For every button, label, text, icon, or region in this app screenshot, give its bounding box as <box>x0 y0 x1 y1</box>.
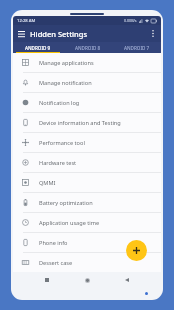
staticText: Hidden Settings <box>30 29 88 39</box>
button[interactable]: Back <box>121 274 133 286</box>
button[interactable]: Notification log <box>13 93 161 112</box>
staticText: Battery optimization <box>39 199 93 207</box>
staticText: Manage notification <box>39 79 92 87</box>
staticText: ANDROID 8 <box>75 45 101 51</box>
button[interactable]: Open navigation menu <box>16 28 27 39</box>
staticText: QMMI <box>39 179 56 187</box>
staticText: Phone info <box>39 239 68 247</box>
button[interactable]: Device information and Testing <box>13 113 161 132</box>
staticText: Device information and Testing <box>39 119 121 127</box>
staticText: Notification log <box>39 99 80 107</box>
button[interactable]: Application usage time <box>13 213 161 232</box>
button[interactable]: Manage applications <box>13 53 161 72</box>
staticText: 0.00B/s <box>124 18 137 23</box>
button[interactable]: ANDROID 9 <box>13 42 63 53</box>
staticText: ANDROID 7 <box>124 45 150 51</box>
button[interactable]: Manage notification <box>13 73 161 92</box>
staticText: 12:28 AM <box>17 18 36 24</box>
staticText: Application usage time <box>39 219 100 227</box>
button[interactable]: Phone info <box>13 233 161 252</box>
button[interactable]: Hardware test <box>13 153 161 172</box>
staticText: ANDROID 9 <box>25 45 51 51</box>
button[interactable]: Add <box>126 240 147 261</box>
button[interactable]: ANDROID 8 <box>63 42 112 53</box>
staticText: Dessert case <box>39 259 73 267</box>
button[interactable]: Dessert case <box>13 253 161 272</box>
button[interactable]: ANDROID 7 <box>112 42 161 53</box>
button[interactable]: Battery optimization <box>13 193 161 212</box>
button[interactable]: QMMI <box>13 173 161 192</box>
button[interactable]: Home <box>81 274 93 286</box>
staticText: Performance tool <box>39 139 85 147</box>
staticText: Hardware test <box>39 159 77 167</box>
button[interactable]: Performance tool <box>13 133 161 152</box>
button[interactable]: Recent apps <box>41 274 53 286</box>
staticText: Manage applications <box>39 59 94 67</box>
button[interactable]: More options <box>147 28 158 39</box>
